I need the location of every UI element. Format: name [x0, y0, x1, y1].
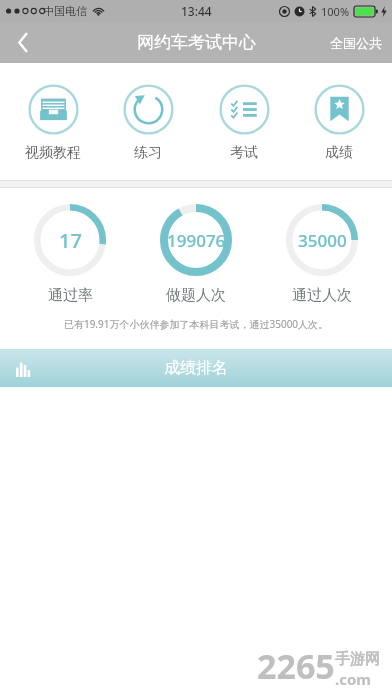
staticText: 练习	[134, 144, 162, 162]
staticText: 网约车考试中心	[137, 32, 256, 53]
button[interactable]: 199076	[140, 204, 252, 305]
staticText: 13:44	[181, 3, 212, 19]
staticText: 手游网	[335, 650, 380, 669]
staticText: 2265	[257, 643, 335, 689]
staticText: 考试	[230, 144, 258, 162]
staticText: 全国公共	[330, 35, 382, 51]
staticText: 199076	[167, 229, 226, 252]
button[interactable]: Back	[0, 22, 46, 63]
staticText: 中国电信	[43, 4, 87, 18]
button[interactable]: 17	[14, 204, 126, 305]
staticText: 通过人次	[292, 286, 352, 305]
button[interactable]: 全国公共	[320, 22, 392, 63]
button[interactable]: 成绩排名	[0, 349, 392, 387]
staticText: .com	[335, 669, 371, 689]
button[interactable]: 视频教程	[10, 84, 96, 162]
staticText: 做题人次	[166, 286, 226, 305]
staticText: 通过率	[48, 286, 93, 305]
button[interactable]: 成绩	[296, 84, 382, 162]
staticText: 成绩排名	[164, 358, 228, 378]
button[interactable]: 练习	[105, 84, 191, 162]
staticText: 视频教程	[25, 144, 81, 162]
staticText: 35000	[298, 229, 347, 252]
staticText: 100%	[321, 4, 350, 19]
staticText: 已有19.91万个小伙伴参加了本科目考试，通过35000人次。	[0, 317, 392, 331]
button[interactable]: 35000	[266, 204, 378, 305]
button[interactable]: 考试	[201, 84, 287, 162]
staticText: 17	[59, 227, 82, 254]
staticText: 成绩	[325, 144, 353, 162]
